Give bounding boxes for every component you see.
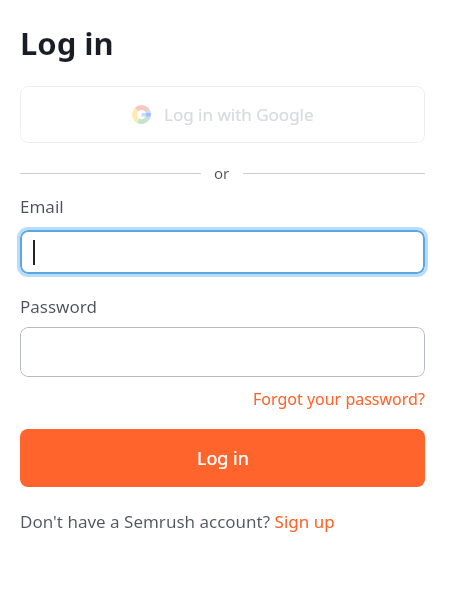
button[interactable]: Forgot your password? bbox=[253, 388, 425, 410]
button[interactable] bbox=[20, 230, 425, 274]
button[interactable]: Google logo bbox=[20, 86, 425, 143]
button[interactable]: Don't have a Semrush account? Sign up bbox=[20, 510, 335, 533]
staticText: Password bbox=[20, 295, 97, 318]
other: Google logo bbox=[132, 105, 151, 124]
staticText: Log in with Google bbox=[164, 103, 314, 126]
staticText: Log in bbox=[197, 446, 249, 471]
staticText: Don't have a Semrush account? Sign up bbox=[20, 510, 335, 533]
button[interactable] bbox=[20, 327, 425, 377]
staticText: or bbox=[214, 163, 230, 183]
staticText: Forgot your password? bbox=[253, 388, 425, 410]
staticText: Log in bbox=[20, 22, 114, 64]
button[interactable]: Log in bbox=[20, 429, 425, 487]
staticText: Email bbox=[20, 195, 64, 218]
